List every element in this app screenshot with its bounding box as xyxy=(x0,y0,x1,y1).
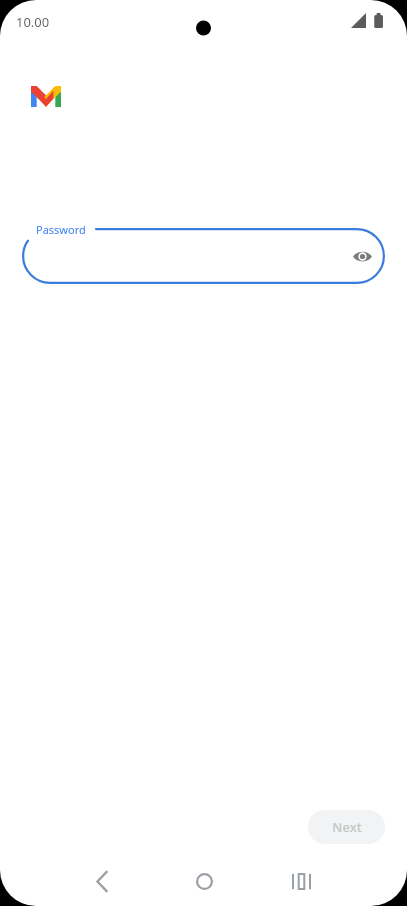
button[interactable]: Password xyxy=(22,228,385,284)
button[interactable]: Show password xyxy=(345,239,379,273)
staticText: Password xyxy=(36,222,86,237)
button[interactable]: Next xyxy=(308,810,385,844)
staticText: 10.00 xyxy=(16,13,50,31)
staticText: Next xyxy=(332,818,362,836)
button[interactable]: Back xyxy=(80,856,124,906)
button[interactable]: Home xyxy=(179,856,229,906)
button[interactable]: Recent apps xyxy=(279,856,323,906)
